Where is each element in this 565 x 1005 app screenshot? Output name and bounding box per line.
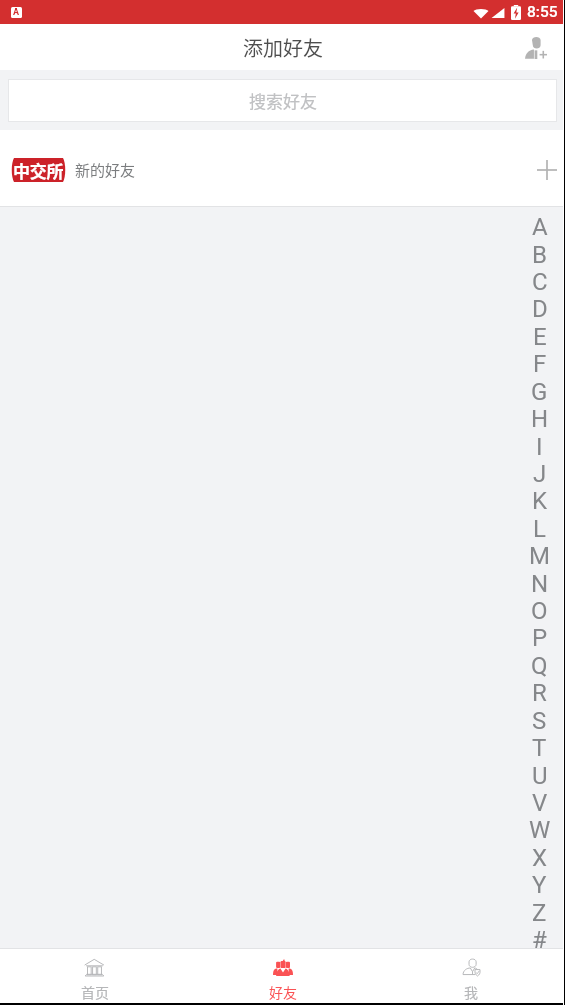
staticText: O xyxy=(531,597,548,625)
button[interactable]: W xyxy=(529,816,551,844)
button[interactable]: M xyxy=(529,542,550,570)
staticText: B xyxy=(532,241,547,269)
button[interactable]: D xyxy=(532,295,548,323)
staticText: C xyxy=(532,268,548,296)
staticText: 8:55 xyxy=(527,3,558,21)
button[interactable]: # xyxy=(532,926,547,954)
button[interactable]: E xyxy=(533,323,547,351)
staticText: 中交所 xyxy=(13,158,64,182)
staticText: Y xyxy=(532,871,547,899)
staticText: 我 xyxy=(464,982,478,1002)
button[interactable]: 首页 xyxy=(0,949,189,1003)
staticText: 添加好友 xyxy=(243,33,323,62)
button[interactable]: 添加 xyxy=(529,152,565,188)
button[interactable]: N xyxy=(531,570,549,598)
staticText: A xyxy=(13,7,20,18)
button[interactable]: 搜索好友 xyxy=(8,79,557,122)
staticText: 新的好友 xyxy=(75,159,136,181)
staticText: I xyxy=(536,433,543,461)
button[interactable]: B xyxy=(532,241,547,269)
button[interactable]: Y xyxy=(532,871,547,899)
staticText: Q xyxy=(531,652,548,680)
button[interactable]: H xyxy=(531,405,549,433)
staticText: G xyxy=(531,378,548,406)
staticText: U xyxy=(532,762,548,790)
staticText: A xyxy=(532,213,548,241)
staticText: 首页 xyxy=(81,982,109,1002)
staticText: X xyxy=(532,844,548,872)
staticText: P xyxy=(532,624,548,652)
button[interactable]: C xyxy=(532,268,548,296)
staticText: E xyxy=(533,323,547,351)
button[interactable]: S xyxy=(532,707,547,735)
button[interactable]: J xyxy=(533,460,547,488)
staticText: L xyxy=(533,515,546,543)
staticText: J xyxy=(533,460,547,488)
staticText: H xyxy=(531,405,549,433)
button[interactable]: 添加联系人 xyxy=(516,27,556,67)
button[interactable]: I xyxy=(536,433,543,461)
staticText: Z xyxy=(532,899,547,927)
staticText: S xyxy=(532,707,547,735)
button[interactable]: V xyxy=(532,789,548,817)
staticText: D xyxy=(532,295,548,323)
staticText: W xyxy=(529,816,551,844)
button[interactable]: L xyxy=(533,515,546,543)
button[interactable]: R xyxy=(532,679,547,707)
staticText: 好友 xyxy=(269,982,297,1002)
button[interactable]: Z xyxy=(532,899,547,927)
staticText: K xyxy=(532,487,548,515)
button[interactable]: 好友 xyxy=(189,949,377,1003)
button[interactable]: P xyxy=(532,624,548,652)
button[interactable]: A xyxy=(532,213,548,241)
button[interactable]: F xyxy=(533,350,547,378)
staticText: N xyxy=(531,570,549,598)
button[interactable]: G xyxy=(531,378,548,406)
button[interactable]: Q xyxy=(531,652,548,680)
staticText: 搜索好友 xyxy=(249,88,317,113)
staticText: M xyxy=(529,542,550,570)
button[interactable]: 中交所 xyxy=(0,130,565,206)
staticText: R xyxy=(532,679,547,707)
staticText: # xyxy=(532,926,547,954)
button[interactable]: O xyxy=(531,597,548,625)
staticText: V xyxy=(532,789,548,817)
staticText: F xyxy=(533,350,547,378)
staticText: T xyxy=(532,734,547,762)
button[interactable]: K xyxy=(532,487,548,515)
button[interactable]: 我 xyxy=(377,949,565,1003)
button[interactable]: T xyxy=(532,734,547,762)
button[interactable]: X xyxy=(532,844,548,872)
button[interactable]: U xyxy=(532,762,548,790)
